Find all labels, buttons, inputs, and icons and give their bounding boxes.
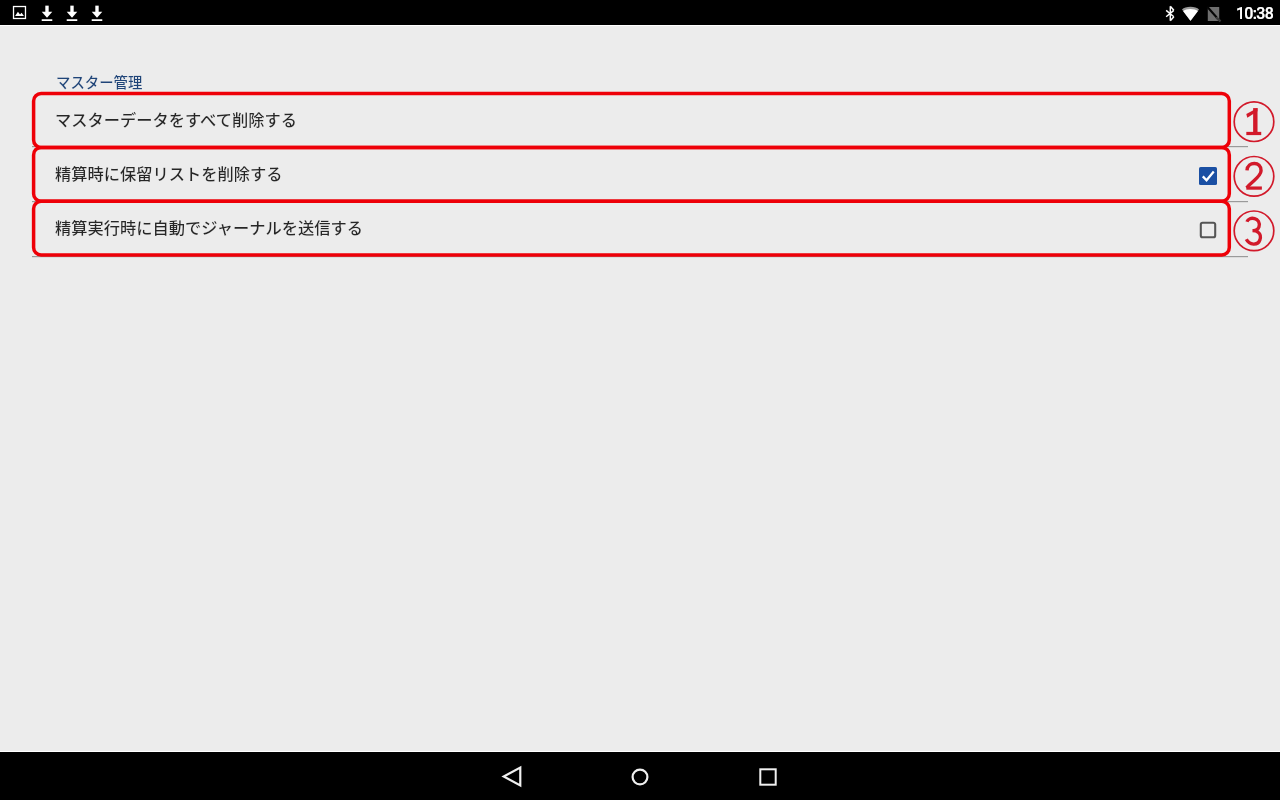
staticText: 精算時に保留リストを削除する [55, 161, 283, 185]
staticText: マスターデータをすべて削除する [55, 107, 297, 131]
button[interactable]: Checked, 精算時に保留リストを削除する [1194, 162, 1222, 190]
button[interactable]: Recent apps [740, 752, 796, 800]
button[interactable]: 精算時に保留リストを削除する [0, 149, 1280, 203]
button[interactable]: Not checked, 精算実行時に自動でジャーナルを送信する [1194, 216, 1222, 244]
button[interactable]: マスターデータをすべて削除する [0, 95, 1280, 149]
staticText: 10:38 [1236, 4, 1274, 23]
button[interactable]: Back [484, 752, 540, 800]
button[interactable]: 精算実行時に自動でジャーナルを送信する [0, 203, 1280, 257]
staticText: 精算実行時に自動でジャーナルを送信する [55, 215, 363, 239]
staticText: マスター管理 [56, 71, 143, 92]
button[interactable]: Home [612, 752, 668, 800]
